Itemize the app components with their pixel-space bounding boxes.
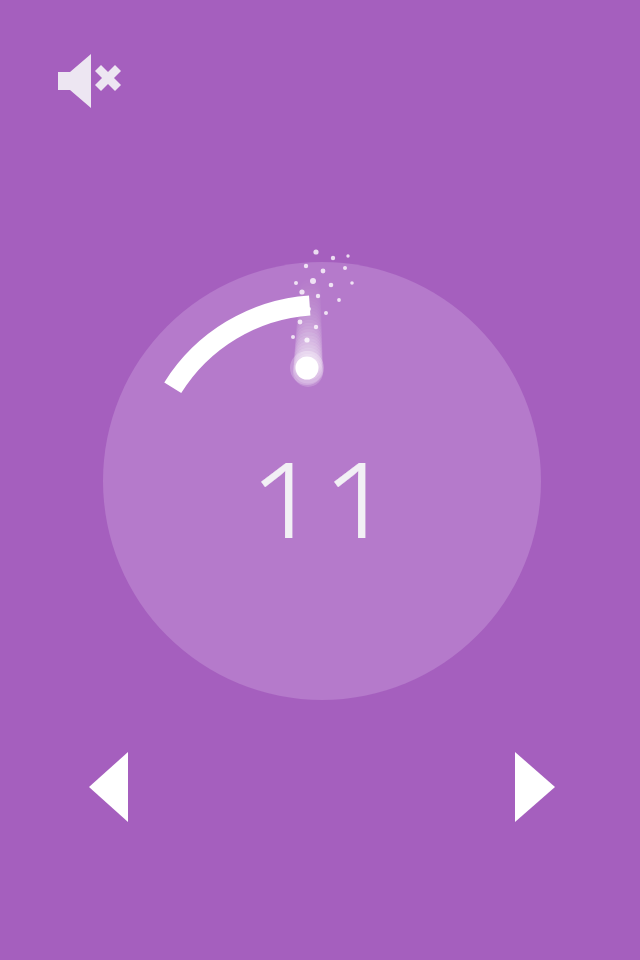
button[interactable]: Sound off	[44, 52, 124, 114]
button[interactable]: Previous	[72, 736, 148, 840]
button[interactable]: Next	[498, 736, 574, 840]
staticText: 11	[222, 418, 422, 538]
